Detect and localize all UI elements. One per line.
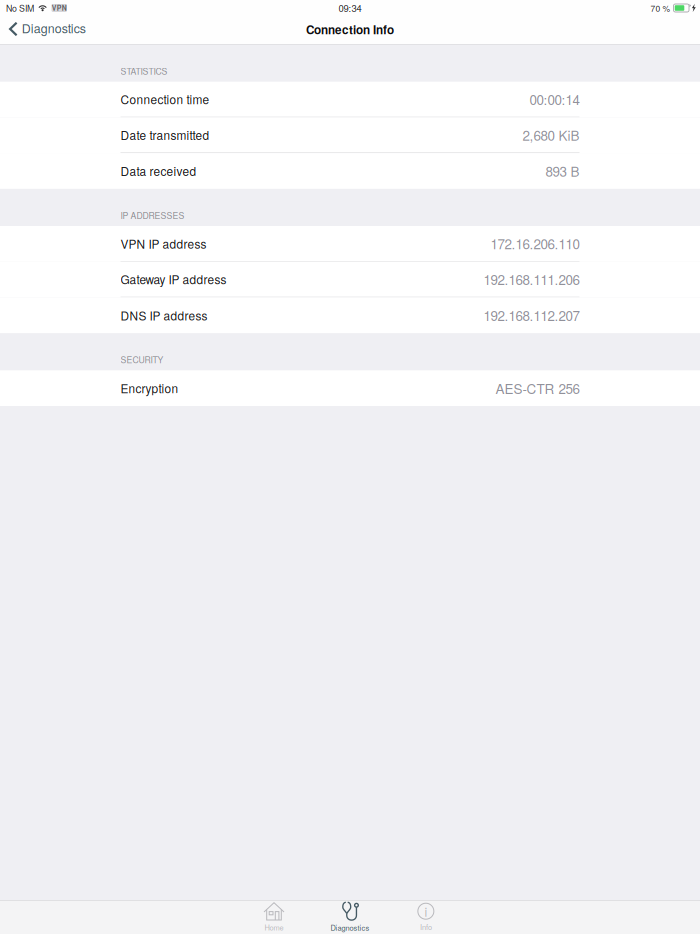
staticText: Encryption (120, 380, 178, 397)
button[interactable]: Home (236, 901, 312, 934)
staticText: 2,680 KiB (522, 125, 579, 145)
staticText: Info (420, 921, 432, 932)
button[interactable]: Date transmitted (0, 117, 700, 153)
staticText: 893 B (545, 161, 579, 181)
staticText: 70 % (650, 2, 670, 14)
staticText: 192.168.111.206 (483, 270, 579, 289)
button[interactable]: Gateway IP address (0, 262, 700, 297)
button[interactable]: VPN IP address (0, 226, 700, 262)
staticText: 00:00:14 (529, 90, 579, 109)
staticText: 09:34 (338, 1, 361, 15)
staticText: STATISTICS (120, 65, 167, 77)
staticText: VPN (52, 3, 67, 13)
staticText: 192.168.112.207 (483, 306, 579, 325)
button[interactable]: Encryption (0, 370, 700, 406)
staticText: No SIM (6, 2, 34, 14)
staticText: Gateway IP address (120, 271, 226, 288)
staticText: AES-CTR 256 (495, 378, 579, 398)
staticText: Connection Info (306, 21, 394, 38)
staticText: Connection time (120, 91, 209, 108)
button[interactable]: DNS IP address (0, 297, 700, 333)
button[interactable]: Data received (0, 153, 700, 189)
staticText: Data received (120, 162, 196, 179)
staticText: Date transmitted (120, 126, 209, 143)
staticText: IP ADDRESSES (120, 209, 184, 221)
button[interactable]: Diagnostics (0, 16, 94, 40)
staticText: i (424, 903, 427, 920)
button[interactable]: Connection time (0, 82, 700, 117)
button[interactable]: i (388, 901, 464, 934)
staticText: SECURITY (120, 353, 163, 366)
button[interactable]: Diagnostics (312, 901, 388, 934)
staticText: 172.16.206.110 (490, 234, 579, 253)
staticText: Diagnostics (22, 19, 86, 37)
staticText: Home (264, 922, 283, 933)
staticText: DNS IP address (120, 307, 207, 324)
staticText: Diagnostics (330, 922, 369, 933)
staticText: VPN IP address (120, 235, 206, 252)
